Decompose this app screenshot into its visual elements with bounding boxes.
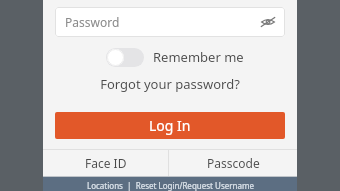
button[interactable]: Log In [55,112,285,139]
button[interactable]: Forgot your password? [43,73,297,95]
staticText: Log In [149,116,191,135]
staticText: Remember me [153,48,244,66]
button[interactable]: Remember me [106,46,244,68]
button[interactable]: Locations | Reset Login/Request Username [87,180,254,191]
button[interactable]: Passcode [169,149,297,177]
staticText: Password [65,14,120,30]
staticText: Forgot your password? [100,75,240,93]
staticText: Face ID [85,155,127,171]
button[interactable]: Show password [257,11,279,33]
button[interactable]: Password [55,7,285,37]
button[interactable]: Face ID [43,149,168,177]
staticText: Passcode [207,155,260,171]
